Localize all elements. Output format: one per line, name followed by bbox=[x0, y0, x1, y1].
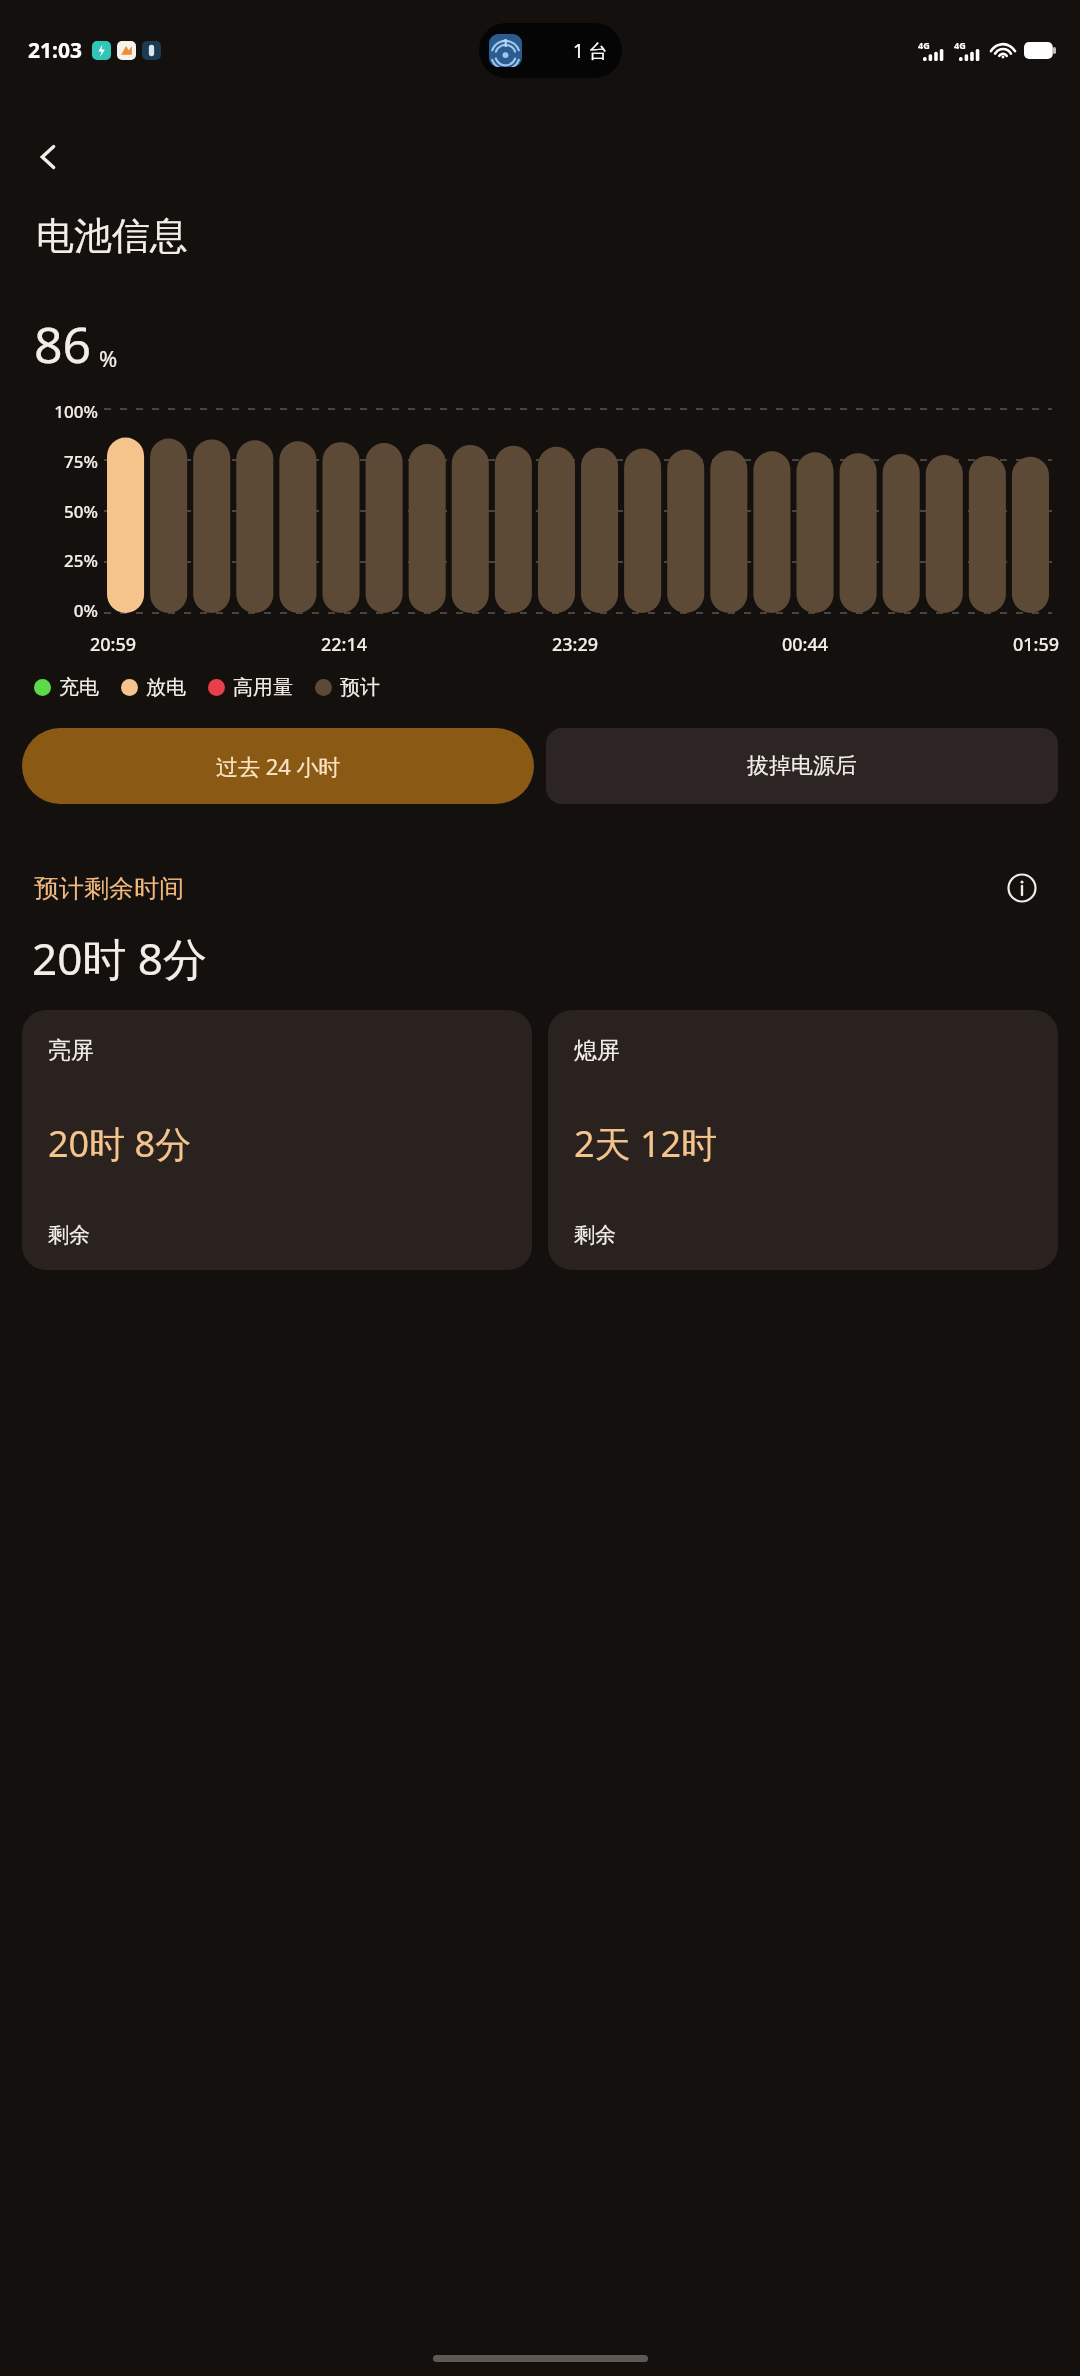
staticText: 100% bbox=[54, 400, 98, 423]
staticText: 剩余 bbox=[48, 1222, 90, 1248]
button[interactable]: Info bbox=[998, 864, 1046, 912]
staticText: 50% bbox=[64, 500, 98, 523]
staticText: 20:59 bbox=[90, 632, 137, 657]
staticText: 1 bbox=[502, 35, 509, 50]
staticText: % bbox=[99, 343, 118, 373]
staticText: 86 bbox=[34, 310, 92, 378]
button[interactable]: 熄屏 bbox=[548, 1010, 1058, 1270]
staticText: 4G bbox=[918, 39, 930, 51]
staticText: 75% bbox=[64, 450, 98, 473]
staticText: 预计剩余时间 bbox=[34, 873, 184, 904]
staticText: 21:03 bbox=[28, 36, 82, 65]
button[interactable]: 过去 24 小时 bbox=[22, 728, 534, 804]
staticText: 22:14 bbox=[321, 632, 368, 657]
staticText: 2天 12时 bbox=[574, 1119, 718, 1168]
staticText: 拔掉电源后 bbox=[747, 752, 857, 780]
staticText: 0% bbox=[73, 599, 98, 622]
button[interactable]: 亮屏 bbox=[22, 1010, 532, 1270]
staticText: 充电 bbox=[59, 675, 99, 700]
staticText: 20时 8分 bbox=[48, 1119, 192, 1168]
button[interactable]: Back bbox=[18, 126, 80, 188]
staticText: 1 台 bbox=[573, 38, 608, 64]
staticText: 25% bbox=[64, 549, 98, 572]
staticText: 01:59 bbox=[1013, 632, 1060, 657]
staticText: 放电 bbox=[146, 675, 186, 700]
staticText: 熄屏 bbox=[574, 1036, 620, 1065]
staticText: 00:44 bbox=[782, 632, 829, 657]
staticText: 剩余 bbox=[574, 1222, 616, 1248]
staticText: 高用量 bbox=[233, 675, 293, 700]
staticText: 23:29 bbox=[552, 632, 599, 657]
staticText: 4G bbox=[954, 39, 966, 51]
button[interactable]: 拔掉电源后 bbox=[546, 728, 1058, 804]
staticText: 20时 8分 bbox=[32, 928, 207, 988]
staticText: 预计 bbox=[340, 675, 380, 700]
staticText: 亮屏 bbox=[48, 1036, 94, 1065]
staticText: 电池信息 bbox=[36, 212, 188, 260]
staticText: 过去 24 小时 bbox=[216, 751, 341, 781]
